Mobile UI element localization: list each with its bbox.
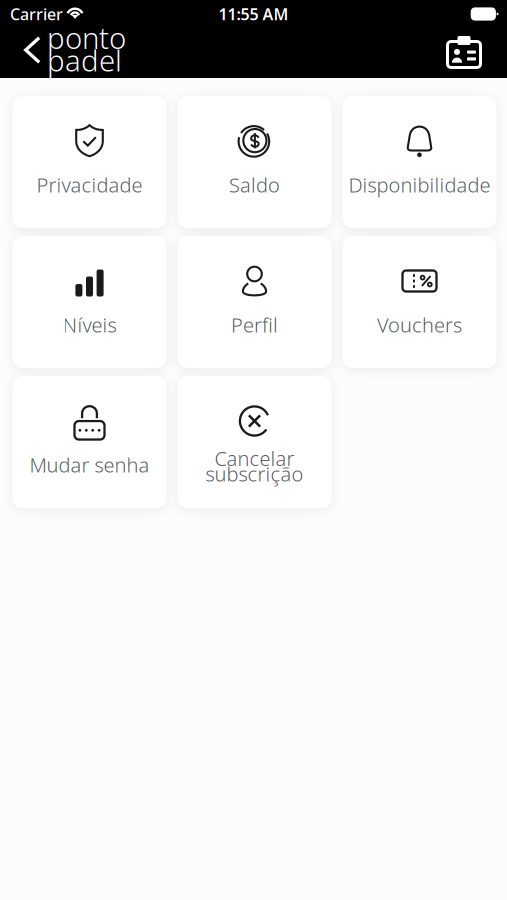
staticText: Cancelar bbox=[214, 445, 294, 472]
button[interactable]: Mudar senha bbox=[12, 376, 166, 508]
button[interactable]: Perfil bbox=[177, 236, 331, 368]
staticText: Níveis bbox=[62, 311, 116, 338]
button[interactable]: Disponibilidade bbox=[342, 96, 496, 228]
staticText: ponto bbox=[47, 18, 126, 57]
staticText: Privacidade bbox=[36, 171, 142, 198]
button[interactable]: Cancelar bbox=[177, 376, 331, 508]
button[interactable]: Vouchers bbox=[342, 236, 496, 368]
staticText: subscrição bbox=[205, 460, 303, 487]
button[interactable]: Back bbox=[6, 27, 51, 73]
staticText: Disponibilidade bbox=[348, 171, 490, 198]
staticText: Mudar senha bbox=[29, 451, 149, 478]
button[interactable]: Níveis bbox=[12, 236, 166, 368]
button[interactable]: Membership card bbox=[437, 29, 507, 75]
staticText: Vouchers bbox=[377, 311, 462, 338]
staticText: Perfil bbox=[231, 311, 278, 338]
staticText: 11:55 AM bbox=[218, 3, 288, 25]
staticText: padel bbox=[47, 40, 122, 79]
button[interactable]: Saldo bbox=[177, 96, 331, 228]
staticText: Carrier bbox=[10, 3, 63, 25]
button[interactable]: Privacidade bbox=[12, 96, 166, 228]
staticText: Saldo bbox=[229, 171, 280, 198]
